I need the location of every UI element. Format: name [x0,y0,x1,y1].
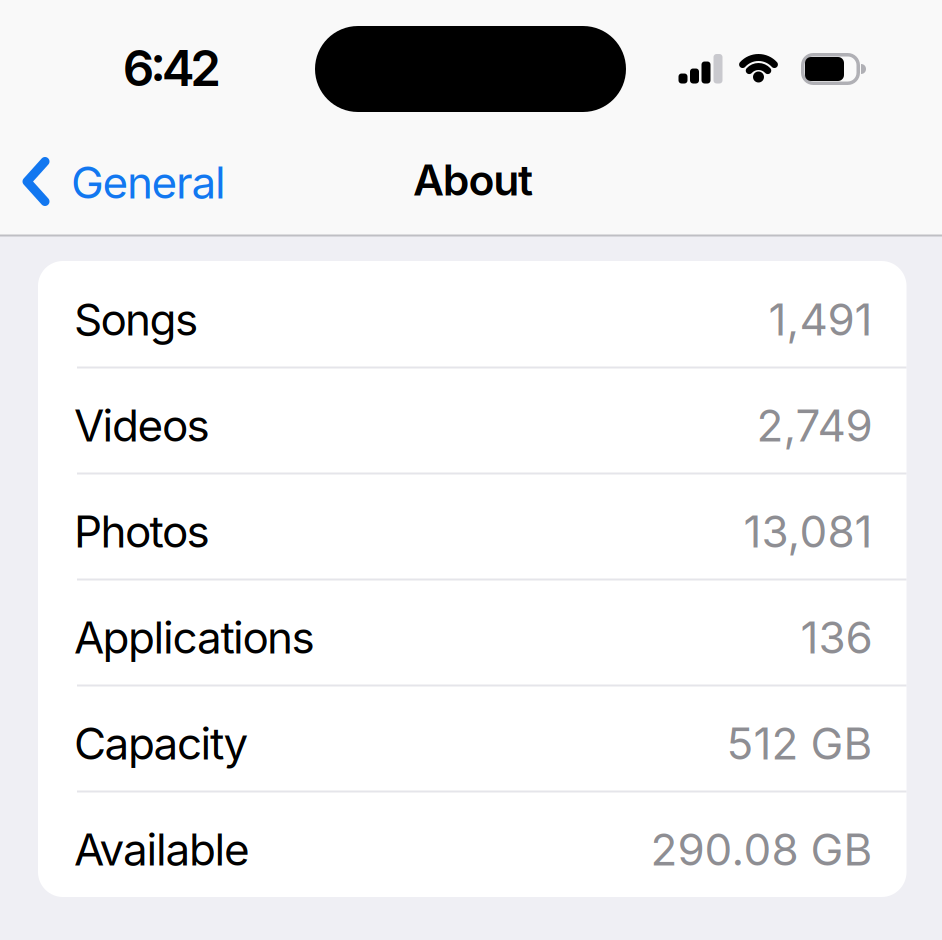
staticText: 512 GB [726,717,872,769]
staticText: 1,491 [768,293,872,345]
staticText: Available [74,823,250,875]
staticText: Videos [74,399,209,451]
staticText: Applications [74,611,314,663]
staticText: General [71,156,226,208]
button[interactable]: General [27,156,226,208]
staticText: 13,081 [743,505,872,557]
staticText: 290.08 GB [650,823,872,875]
staticText: Capacity [74,717,248,769]
staticText: Songs [74,293,198,345]
staticText: 6:42 [123,39,221,97]
staticText: About [413,155,533,205]
staticText: Photos [74,505,209,557]
staticText: 136 [800,611,872,663]
staticText: 2,749 [756,399,872,451]
